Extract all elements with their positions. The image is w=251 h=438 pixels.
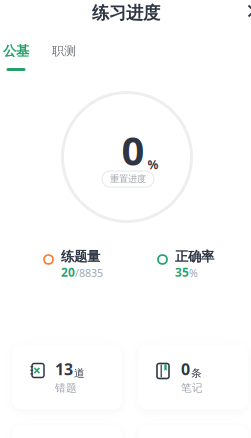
staticText: % [147, 157, 158, 172]
staticText: 公基 [3, 43, 29, 59]
staticText: 练习进度 [92, 2, 160, 24]
button[interactable]: Close [240, 0, 251, 24]
staticText: 条 [191, 366, 202, 380]
staticText: 错题 [55, 381, 77, 394]
button[interactable]: 职测 [46, 43, 82, 75]
staticText: 正确率 [175, 248, 214, 265]
staticText: % [189, 266, 198, 280]
button[interactable]: 重置进度 [102, 171, 154, 187]
button[interactable]: 0 [138, 344, 248, 409]
staticText: 13 [55, 358, 73, 380]
staticText: 职测 [52, 44, 76, 58]
staticText: 笔记 [181, 381, 203, 394]
staticText: 重置进度 [110, 173, 146, 185]
staticText: 练题量 [61, 248, 100, 265]
staticText: 35 [175, 264, 189, 280]
staticText: /8835 [75, 266, 103, 280]
staticText: 0 [121, 123, 144, 176]
staticText: 20 [61, 264, 75, 280]
staticText: 道 [74, 366, 85, 380]
button[interactable]: 13 [12, 344, 122, 409]
button[interactable]: 公基 [0, 43, 34, 75]
staticText: 0 [181, 358, 190, 380]
